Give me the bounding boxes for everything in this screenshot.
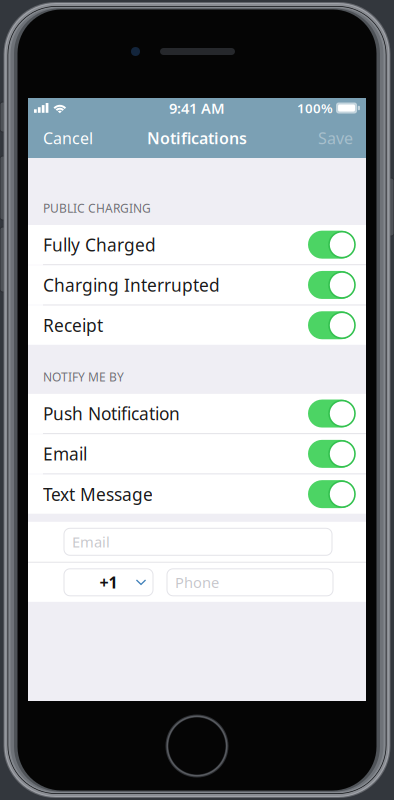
staticText: Receipt [43, 314, 103, 337]
staticText: Cancel [43, 127, 93, 149]
staticText: Push Notification [43, 402, 180, 425]
staticText: Charging Interrupted [43, 273, 220, 296]
button[interactable]: Fully Charged [28, 225, 366, 264]
button[interactable]: Receipt [28, 306, 366, 345]
staticText: Email [72, 532, 110, 552]
staticText: Phone [175, 573, 219, 592]
staticText: Email [43, 442, 87, 465]
staticText: Text Message [43, 483, 153, 506]
staticText: +1 [99, 572, 117, 593]
staticText: Save [318, 127, 353, 149]
button[interactable]: Text Message [28, 474, 366, 514]
staticText: PUBLIC CHARGING [43, 200, 151, 216]
button[interactable]: Cancel [28, 118, 105, 157]
staticText: Notifications [147, 127, 247, 149]
staticText: 9:41 AM [169, 98, 225, 118]
button[interactable]: Email [28, 434, 366, 473]
button[interactable]: +1 [64, 569, 153, 596]
staticText: NOTIFY ME BY [43, 369, 124, 385]
button[interactable]: Save [306, 118, 366, 157]
staticText: Fully Charged [43, 233, 156, 256]
staticText: 100% [297, 99, 333, 117]
button[interactable]: Charging Interrupted [28, 265, 366, 305]
button[interactable]: Push Notification [28, 394, 366, 433]
